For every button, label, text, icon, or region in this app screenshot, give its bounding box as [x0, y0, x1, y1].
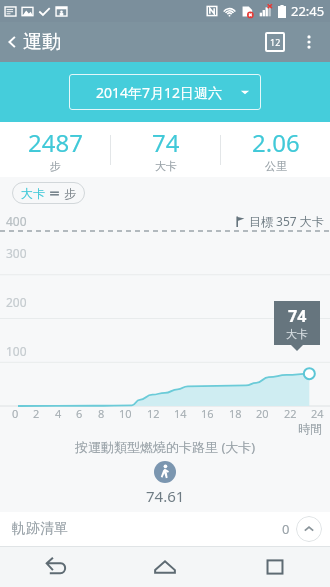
staticText: 步 — [64, 186, 76, 201]
staticText: 大卡 — [286, 327, 308, 341]
staticText: 200 — [6, 294, 27, 310]
staticText: 目標 357 大卡 — [249, 213, 324, 229]
staticText: 0 — [12, 406, 19, 421]
staticText: 2487 — [28, 126, 83, 159]
staticText: 按運動類型燃燒的卡路里 (大卡) — [75, 438, 256, 456]
staticText: 大卡 — [21, 186, 45, 201]
staticText: 軌跡清單 — [12, 520, 68, 538]
button[interactable]: Recents — [220, 547, 330, 587]
button[interactable]: Home — [110, 547, 220, 587]
staticText: 74 — [288, 305, 307, 327]
button[interactable]: 2487 — [0, 122, 110, 177]
staticText: 2014年7月12日週六 — [79, 83, 239, 102]
other: Back — [4, 34, 20, 50]
staticText: 2.06 — [252, 126, 300, 159]
staticText: 100 — [6, 343, 27, 359]
staticText: 300 — [6, 245, 27, 261]
button[interactable]: More options — [292, 25, 326, 59]
button[interactable]: Expand — [296, 516, 322, 542]
button[interactable]: Walking — [154, 461, 176, 483]
button[interactable]: Back — [0, 30, 69, 54]
staticText: 24 — [311, 406, 324, 421]
staticText: 14 — [174, 406, 187, 421]
staticText: 400 — [6, 213, 27, 229]
button[interactable]: 2014年7月12日週六 — [69, 74, 261, 110]
staticText: 22:45 — [291, 2, 325, 20]
button[interactable]: 2.06 — [221, 122, 330, 177]
button[interactable]: Back — [0, 547, 110, 587]
button[interactable]: Calendar — [258, 25, 292, 59]
staticText: 10 — [119, 406, 132, 421]
staticText: 22 — [284, 406, 297, 421]
staticText: 6 — [76, 406, 83, 421]
staticText: 2 — [33, 406, 40, 421]
staticText: 18 — [229, 406, 242, 421]
staticText: 運動 — [23, 30, 61, 54]
staticText: 4 — [55, 406, 62, 421]
staticText: 20 — [256, 406, 269, 421]
staticText: 74 — [152, 126, 180, 159]
staticText: 8 — [98, 406, 105, 421]
staticText: 16 — [201, 406, 214, 421]
button[interactable]: 大卡 — [12, 182, 85, 204]
staticText: 0 — [282, 520, 290, 538]
staticText: 12 — [147, 406, 160, 421]
staticText: 時間 — [298, 421, 322, 436]
staticText: 12 — [270, 36, 281, 48]
button[interactable]: 軌跡清單 — [0, 512, 330, 546]
staticText: 74.61 — [146, 486, 185, 506]
staticText: 步 — [50, 159, 61, 173]
staticText: 大卡 — [155, 159, 177, 173]
button[interactable]: 74 — [111, 122, 220, 177]
staticText: 公里 — [265, 159, 287, 173]
